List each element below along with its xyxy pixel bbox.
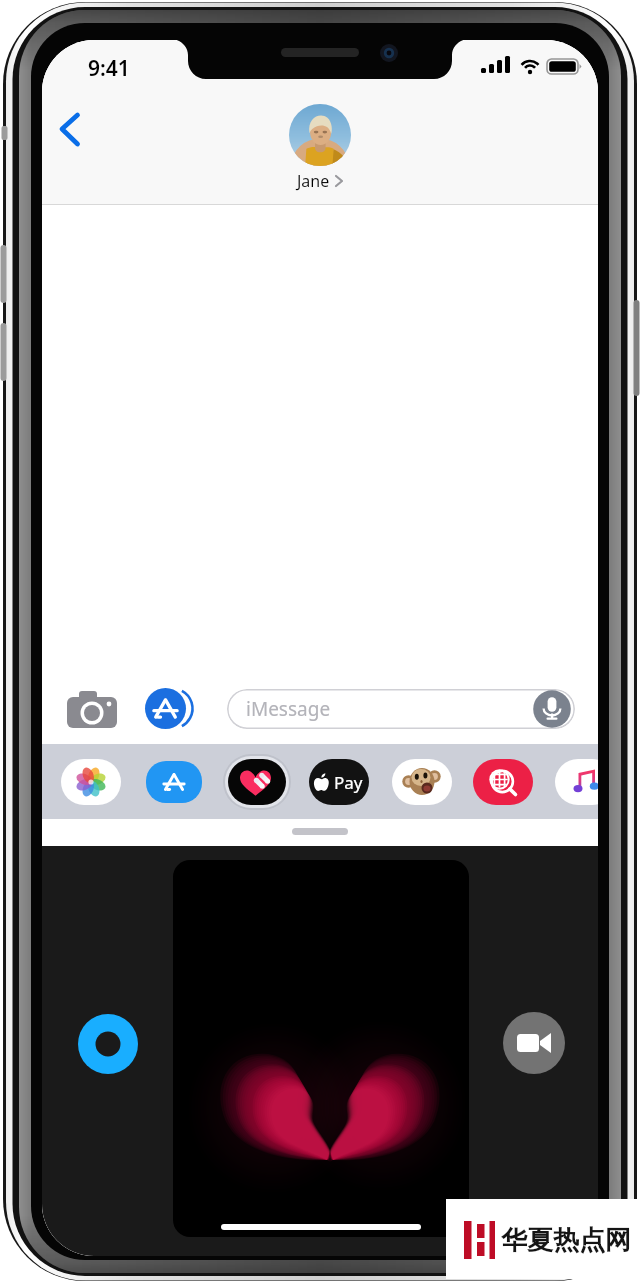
staticText: 华夏热点网 [501, 1224, 631, 1257]
staticText: Pay [334, 771, 363, 794]
button[interactable]: Record [78, 1014, 138, 1074]
button[interactable]: Apple Pay [308, 759, 370, 805]
staticText: 9:41 [88, 54, 130, 83]
button[interactable]: Back [48, 93, 98, 145]
button[interactable]: Camera [67, 690, 117, 728]
button[interactable]: Photos [60, 759, 122, 805]
button[interactable]: Drag handle [292, 828, 348, 835]
button[interactable]: Memoji [391, 759, 453, 805]
button[interactable]: App Store [143, 759, 205, 805]
button[interactable]: Jane [289, 104, 351, 192]
button[interactable]: Digital Touch [226, 759, 288, 805]
button[interactable]: Images [472, 759, 534, 805]
button[interactable] [173, 860, 469, 1237]
button[interactable]: App Store [144, 688, 206, 730]
button[interactable]: Music [554, 759, 598, 805]
button[interactable]: Video [503, 1012, 565, 1074]
staticText: iMessage [246, 696, 331, 722]
button[interactable]: iMessage [227, 689, 575, 729]
staticText: Jane [297, 170, 330, 192]
